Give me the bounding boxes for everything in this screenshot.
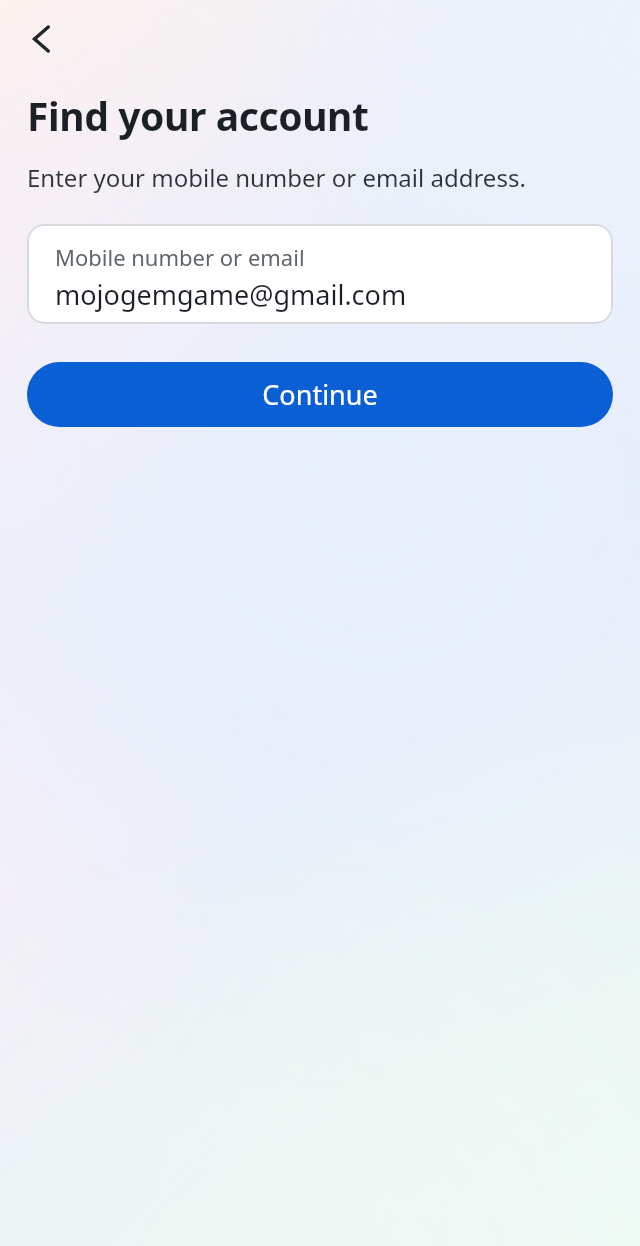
- staticText: mojogemgame@gmail.com: [55, 276, 407, 313]
- button[interactable]: Mobile number or email: [27, 224, 613, 324]
- button[interactable]: Continue: [27, 362, 613, 427]
- staticText: Mobile number or email: [55, 242, 305, 272]
- staticText: Enter your mobile number or email addres…: [27, 161, 526, 194]
- staticText: Find your account: [27, 89, 369, 142]
- staticText: Continue: [262, 376, 378, 413]
- button[interactable]: Back: [14, 11, 70, 67]
